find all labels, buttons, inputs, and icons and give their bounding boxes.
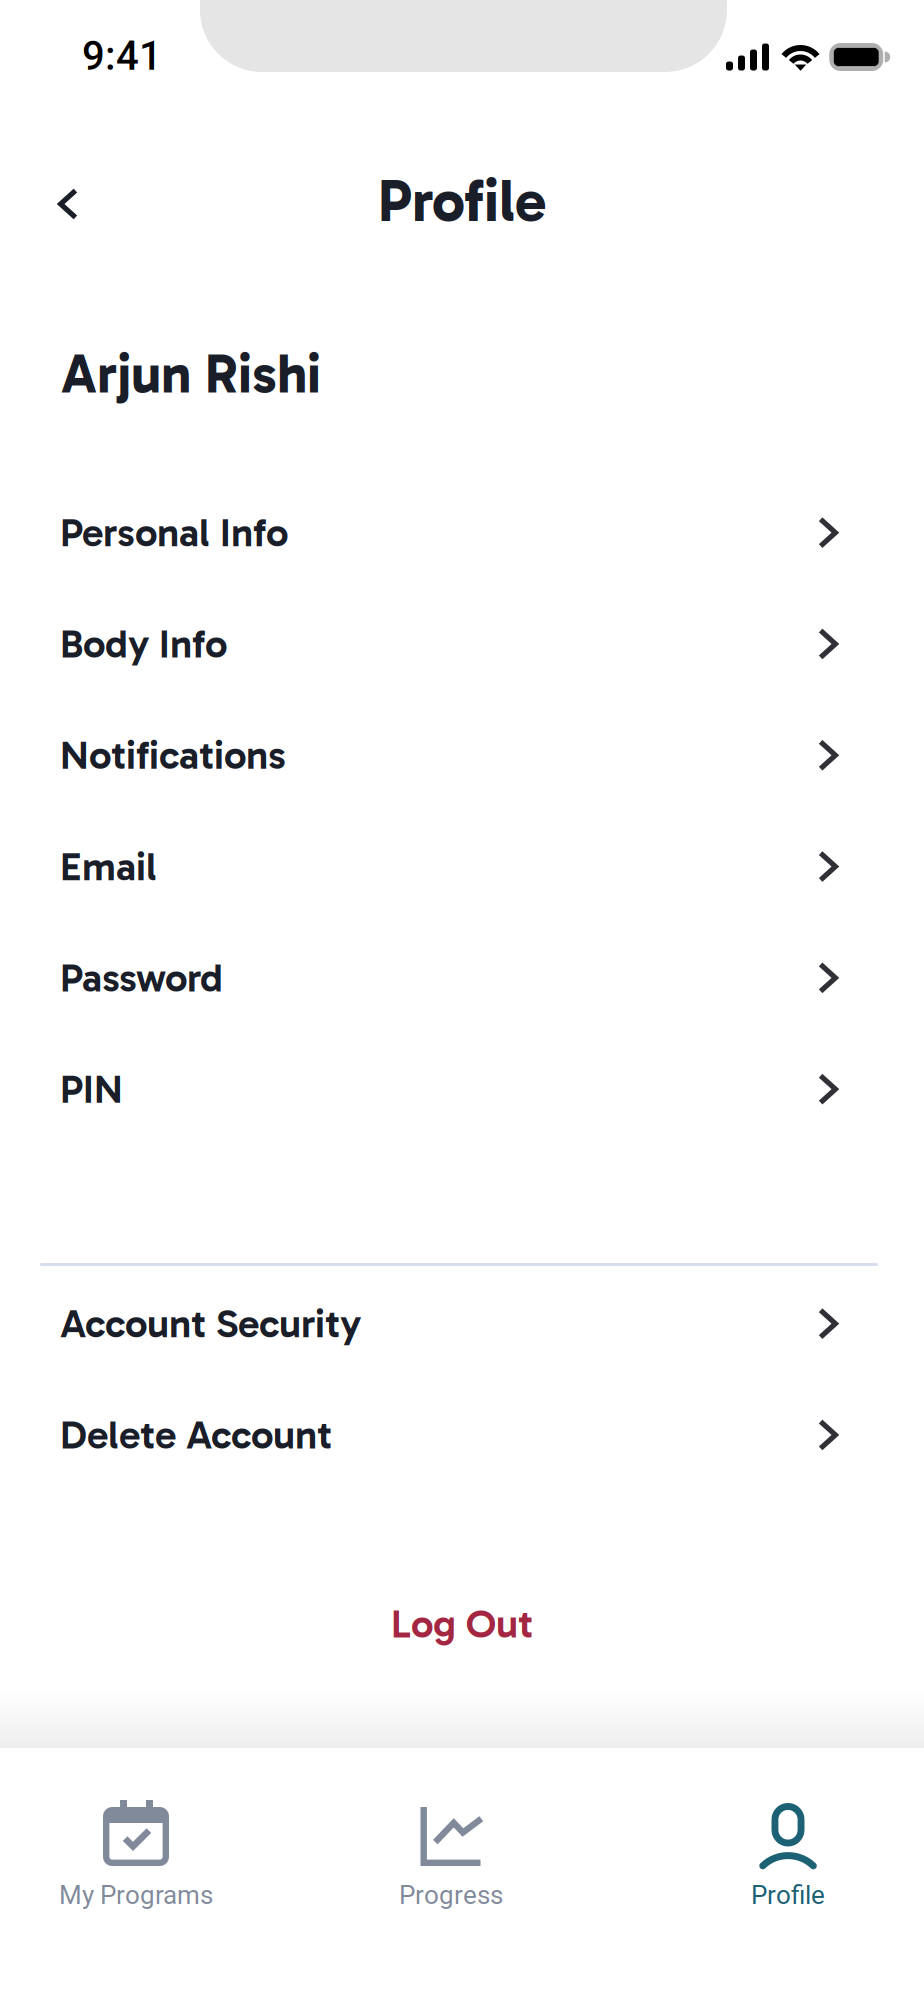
button[interactable]: Notifications: [0, 700, 924, 811]
button[interactable]: PIN: [0, 1033, 924, 1145]
button[interactable]: Personal Info: [0, 477, 924, 588]
staticText: Profile: [751, 1880, 825, 1910]
staticText: Account Security: [60, 1300, 361, 1348]
staticText: Arjun Rishi: [61, 341, 321, 407]
button[interactable]: Account Security: [0, 1268, 924, 1379]
button[interactable]: Email: [0, 811, 924, 922]
button[interactable]: Back: [28, 160, 108, 248]
button[interactable]: Progress: [331, 1800, 571, 1950]
staticText: Progress: [399, 1880, 503, 1910]
staticText: Personal Info: [60, 509, 289, 557]
staticText: Body Info: [60, 620, 228, 668]
staticText: Delete Account: [60, 1411, 332, 1459]
staticText: My Programs: [59, 1880, 213, 1910]
staticText: Notifications: [60, 731, 286, 779]
button[interactable]: Body Info: [0, 588, 924, 700]
button[interactable]: Profile: [668, 1800, 908, 1950]
staticText: Password: [60, 954, 223, 1002]
button[interactable]: My Programs: [16, 1800, 256, 1950]
button[interactable]: Log Out: [0, 1584, 924, 1664]
staticText: 9:41: [82, 33, 162, 79]
staticText: Email: [60, 842, 157, 890]
staticText: Log Out: [391, 1600, 533, 1648]
staticText: PIN: [60, 1065, 123, 1113]
staticText: Profile: [378, 166, 546, 236]
button[interactable]: Delete Account: [0, 1379, 924, 1491]
button[interactable]: Password: [0, 922, 924, 1033]
